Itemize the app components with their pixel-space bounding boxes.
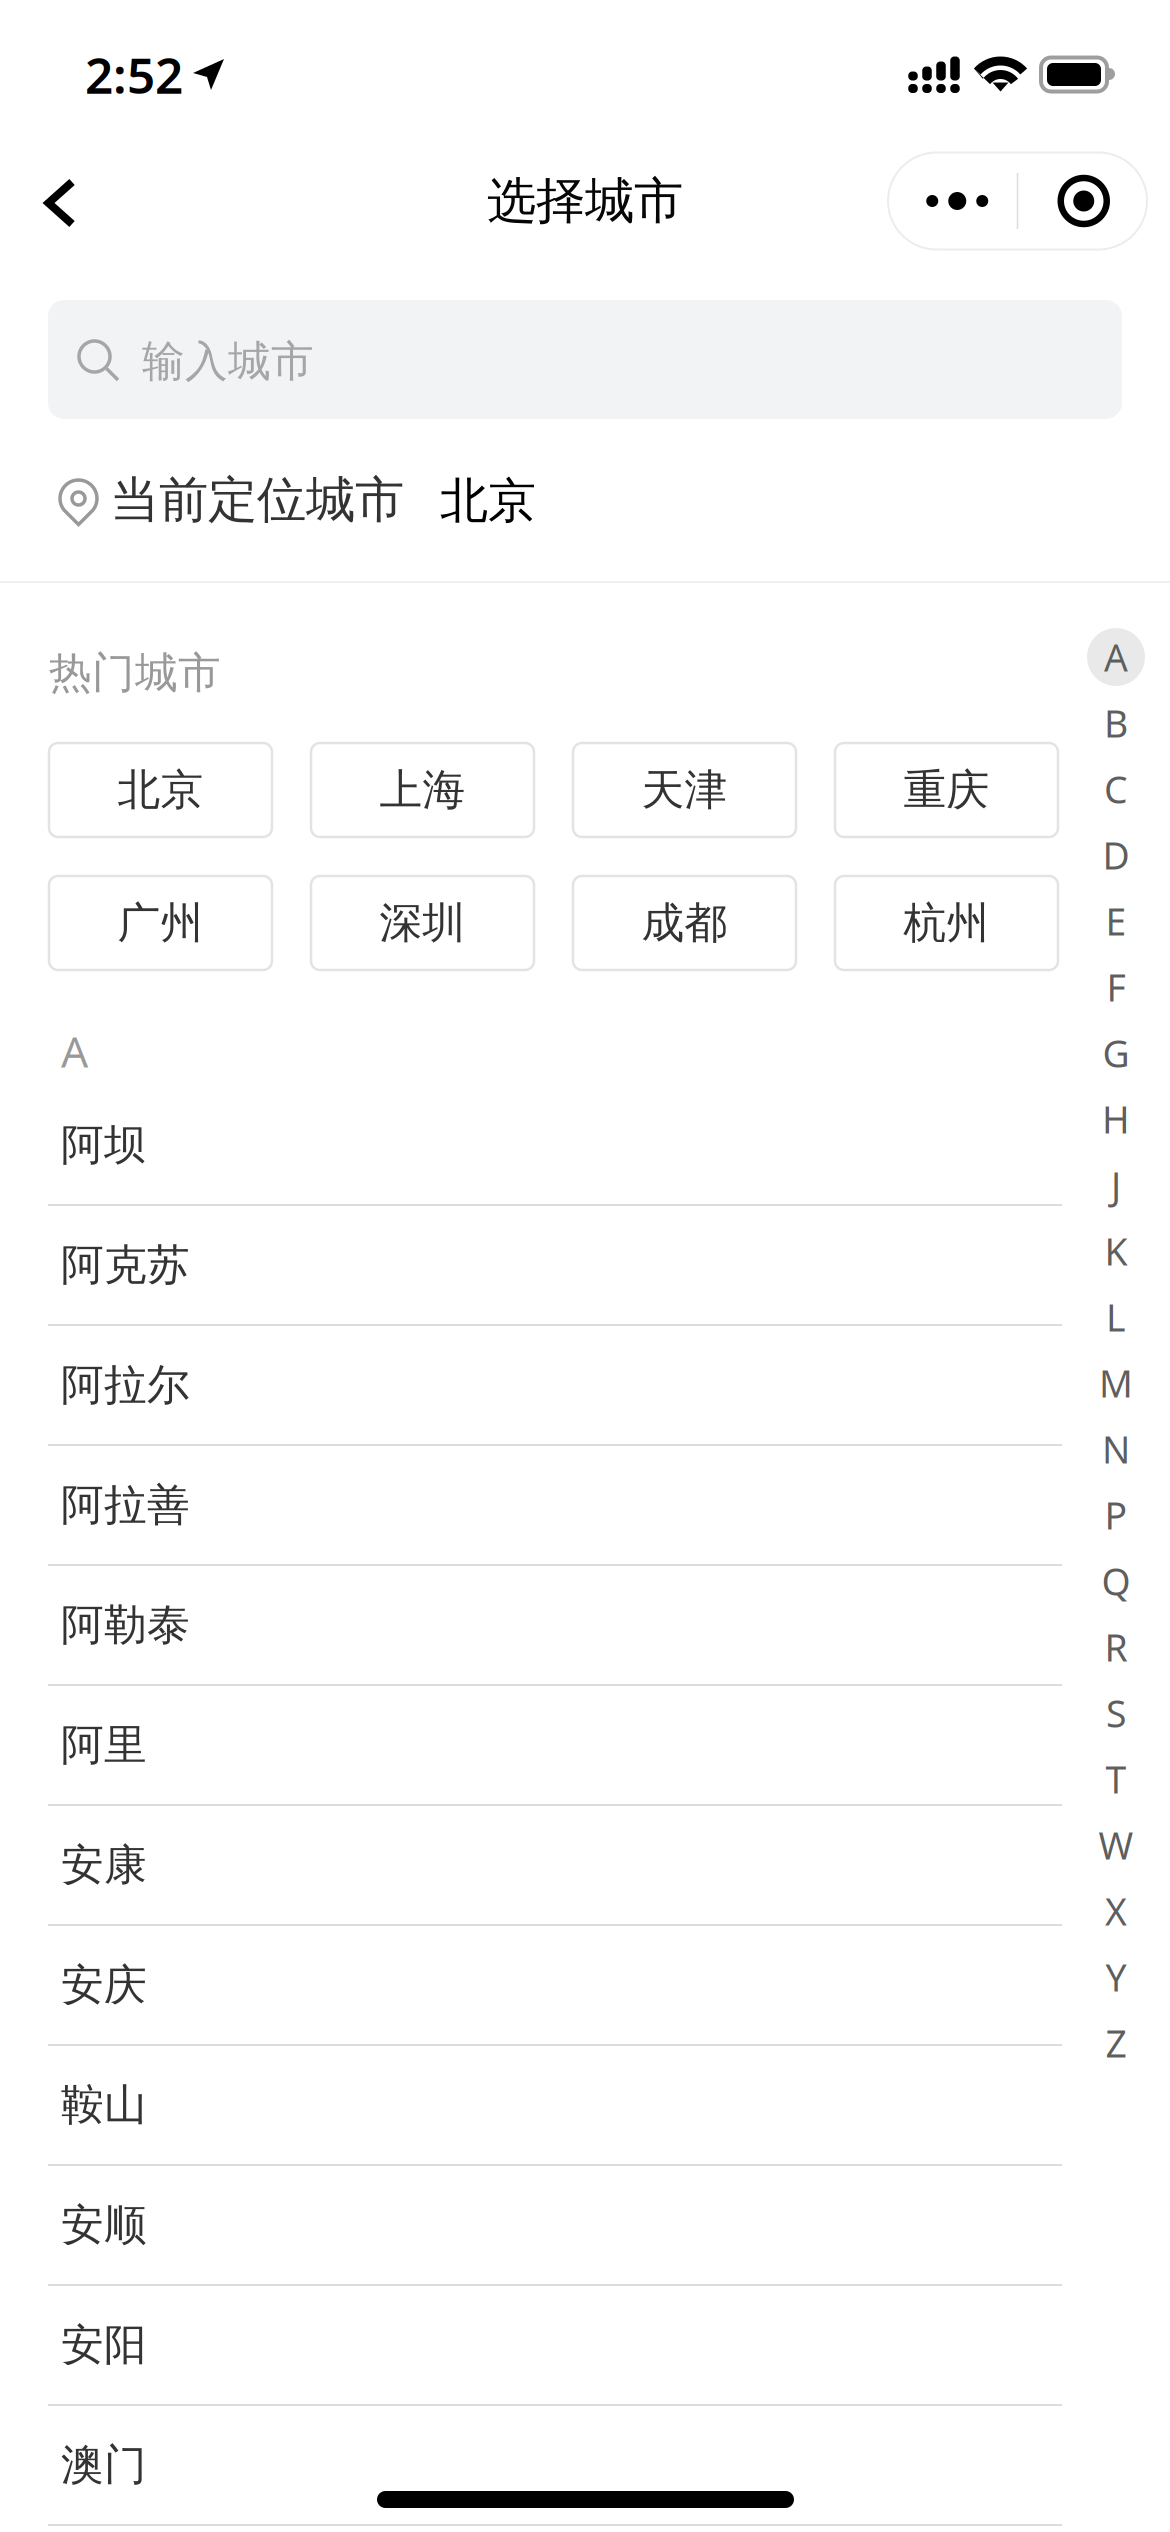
button[interactable]: F <box>1083 954 1149 1020</box>
button[interactable]: P <box>1083 1482 1149 1548</box>
staticText: 2:52 <box>85 42 183 107</box>
button[interactable]: Y <box>1083 1944 1149 2010</box>
staticText: Q <box>1101 1556 1130 1606</box>
staticText: A <box>1104 632 1128 682</box>
button[interactable]: 安康 <box>0 1806 1170 1926</box>
button[interactable]: 天津 <box>573 743 796 837</box>
button[interactable]: 杭州 <box>835 876 1058 970</box>
button[interactable]: 阿勒泰 <box>0 1566 1170 1686</box>
staticText: B <box>1104 698 1128 748</box>
staticText: J <box>1111 1160 1121 1210</box>
staticText: 输入城市 <box>142 335 314 388</box>
button[interactable]: R <box>1083 1614 1149 1680</box>
button[interactable]: M <box>1083 1350 1149 1416</box>
staticText: 安庆 <box>61 1959 147 2011</box>
staticText: 成都 <box>641 897 727 949</box>
staticText: Z <box>1105 2018 1126 2068</box>
staticText: K <box>1104 1226 1127 1276</box>
staticText: M <box>1099 1358 1133 1408</box>
staticText: N <box>1102 1424 1130 1474</box>
staticText: 北京 <box>412 471 536 530</box>
button[interactable]: 深圳 <box>311 876 534 970</box>
button[interactable]: D <box>1083 822 1149 888</box>
staticText: S <box>1106 1688 1126 1738</box>
button[interactable]: T <box>1083 1746 1149 1812</box>
button[interactable]: B <box>1083 690 1149 756</box>
staticText: 鞍山 <box>61 2079 147 2131</box>
staticText: 阿拉善 <box>61 1479 190 1531</box>
staticText: 阿里 <box>61 1719 147 1771</box>
staticText: 阿克苏 <box>61 1239 190 1291</box>
staticText: W <box>1098 1820 1133 1870</box>
staticText: 阿坝 <box>61 1119 147 1171</box>
button[interactable]: X <box>1083 1878 1149 1944</box>
button[interactable]: 鞍山 <box>0 2046 1170 2166</box>
button[interactable]: J <box>1083 1152 1149 1218</box>
button[interactable]: L <box>1083 1284 1149 1350</box>
staticText: 阿勒泰 <box>61 1599 190 1651</box>
button[interactable]: 阿里 <box>0 1686 1170 1806</box>
staticText: 阿拉尔 <box>61 1359 190 1411</box>
button[interactable]: 阿拉尔 <box>0 1326 1170 1446</box>
button[interactable]: 阿拉善 <box>0 1446 1170 1566</box>
button[interactable]: 安阳 <box>0 2286 1170 2406</box>
button[interactable]: Back <box>0 133 98 263</box>
staticText: 天津 <box>641 764 727 816</box>
button[interactable]: H <box>1083 1086 1149 1152</box>
staticText: 选择城市 <box>487 171 683 231</box>
button[interactable]: G <box>1083 1020 1149 1086</box>
button[interactable]: 输入城市 <box>48 300 1122 419</box>
button[interactable]: C <box>1083 756 1149 822</box>
button[interactable]: 重庆 <box>835 743 1058 837</box>
button[interactable]: 北京 <box>49 743 272 837</box>
button[interactable]: 广州 <box>49 876 272 970</box>
button[interactable]: Close mini program <box>1018 153 1147 249</box>
staticText: F <box>1106 962 1125 1012</box>
button[interactable]: 成都 <box>573 876 796 970</box>
staticText: L <box>1106 1292 1126 1342</box>
staticText: 深圳 <box>379 897 465 949</box>
button[interactable]: 阿克苏 <box>0 1206 1170 1326</box>
staticText: 广州 <box>117 897 203 949</box>
staticText: 安阳 <box>61 2319 147 2371</box>
staticText: Y <box>1105 1952 1126 2002</box>
staticText: 热门城市 <box>49 647 221 699</box>
button[interactable]: 上海 <box>311 743 534 837</box>
button[interactable]: W <box>1083 1812 1149 1878</box>
staticText: 上海 <box>379 764 465 816</box>
button[interactable]: K <box>1083 1218 1149 1284</box>
staticText: D <box>1102 830 1129 880</box>
staticText: 北京 <box>117 764 203 816</box>
staticText: 当前定位城市 <box>95 470 404 530</box>
button[interactable]: More options <box>888 153 1017 249</box>
staticText: 杭州 <box>903 897 989 949</box>
staticText: G <box>1102 1028 1129 1078</box>
staticText: C <box>1104 764 1128 814</box>
staticText: T <box>1105 1754 1126 1804</box>
staticText: X <box>1105 1886 1127 1936</box>
staticText: E <box>1105 896 1126 946</box>
staticText: 安顺 <box>61 2199 147 2251</box>
button[interactable]: Q <box>1083 1548 1149 1614</box>
button[interactable]: 安顺 <box>0 2166 1170 2286</box>
staticText: R <box>1104 1622 1127 1672</box>
staticText: P <box>1104 1490 1127 1540</box>
button[interactable]: 阿坝 <box>0 1086 1170 1206</box>
staticText: H <box>1102 1094 1130 1144</box>
button[interactable]: 澳门 <box>0 2406 1170 2526</box>
staticText: 安康 <box>61 1839 147 1891</box>
staticText: 重庆 <box>903 764 989 816</box>
button[interactable]: N <box>1083 1416 1149 1482</box>
button[interactable]: S <box>1083 1680 1149 1746</box>
button[interactable]: E <box>1083 888 1149 954</box>
staticText: 澳门 <box>61 2439 147 2491</box>
button[interactable]: A <box>1083 624 1149 690</box>
button[interactable]: Z <box>1083 2010 1149 2076</box>
staticText: A <box>61 1023 88 1079</box>
button[interactable]: 安庆 <box>0 1926 1170 2046</box>
button[interactable]: 当前定位城市 <box>0 419 1170 581</box>
